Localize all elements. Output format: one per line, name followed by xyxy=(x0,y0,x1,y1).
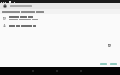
button[interactable]: Document xyxy=(0,14,120,22)
other: Contact xyxy=(3,24,6,27)
button[interactable]: App icon xyxy=(3,4,7,8)
button[interactable]: More options xyxy=(108,44,111,47)
button[interactable]: Contact xyxy=(0,22,120,29)
button[interactable]: Recents xyxy=(78,68,84,74)
other: Document xyxy=(3,17,6,20)
button[interactable]: Action xyxy=(110,62,117,65)
button[interactable]: Back xyxy=(30,68,36,74)
button[interactable]: Home xyxy=(54,68,60,74)
button[interactable]: Action xyxy=(100,62,107,65)
